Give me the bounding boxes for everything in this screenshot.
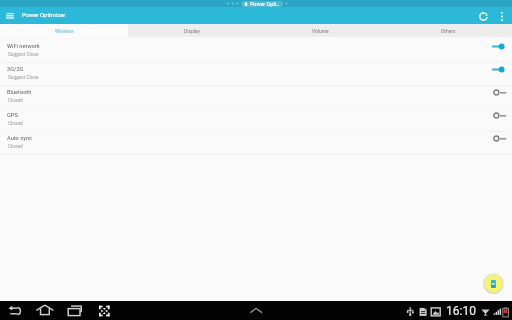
staticText: Closed <box>8 98 23 104</box>
staticText: Wireless <box>55 28 74 34</box>
button[interactable]: Show navigation bar <box>248 301 264 320</box>
button[interactable]: Optimize battery <box>483 273 504 294</box>
staticText: Others <box>441 28 456 34</box>
button[interactable]: Toggle switch <box>489 131 509 146</box>
button[interactable]: Screenshot <box>96 301 116 320</box>
button[interactable]: Volume <box>256 24 384 37</box>
button[interactable]: Toggle switch <box>489 108 509 123</box>
button[interactable]: Refresh <box>475 8 491 24</box>
button[interactable]: Toggle switch <box>489 39 509 54</box>
button[interactable]: Back <box>6 301 25 320</box>
button[interactable]: More options <box>494 8 510 24</box>
button[interactable]: Home <box>35 301 55 320</box>
button[interactable]: Toggle switch <box>489 62 509 77</box>
button[interactable]: Recent apps <box>66 301 86 320</box>
staticText: Suggest Close <box>8 75 39 81</box>
staticText: Display <box>184 28 200 34</box>
staticText: Bluetooth <box>7 89 32 96</box>
button[interactable]: Display <box>128 24 256 37</box>
button[interactable]: Auto sync <box>0 132 512 155</box>
staticText: WiFi network <box>7 43 40 50</box>
button[interactable]: WiFi network <box>0 40 512 63</box>
button[interactable]: Others <box>384 24 512 37</box>
button[interactable]: Navigation menu <box>2 8 18 24</box>
staticText: Closed <box>8 144 23 150</box>
staticText: Closed <box>8 121 23 127</box>
button[interactable]: GPS <box>0 109 512 132</box>
button[interactable]: Wireless <box>0 24 128 37</box>
staticText: 16:10 <box>446 304 476 318</box>
staticText: Suggest Close <box>8 52 39 58</box>
staticText: Power Optimizer <box>22 12 66 19</box>
staticText: GPS <box>7 112 18 119</box>
button[interactable]: Bluetooth <box>0 86 512 109</box>
button[interactable]: Toggle switch <box>489 85 509 100</box>
staticText: Volume <box>312 28 329 34</box>
button[interactable]: 3G/2G <box>0 63 512 86</box>
staticText: Auto sync <box>7 135 33 142</box>
staticText: 3G/2G <box>7 66 24 73</box>
staticText: Power Opti.. <box>250 1 280 7</box>
